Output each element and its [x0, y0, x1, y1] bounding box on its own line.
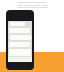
- staticText: AMET CONSECTETUR ADIPI: [17, 3, 48, 6]
- staticText: SED DO EIUSMOD TEMPOR: [17, 5, 48, 8]
- staticText: LOREM IPSUM DOLOR SIT: [17, 0, 47, 3]
